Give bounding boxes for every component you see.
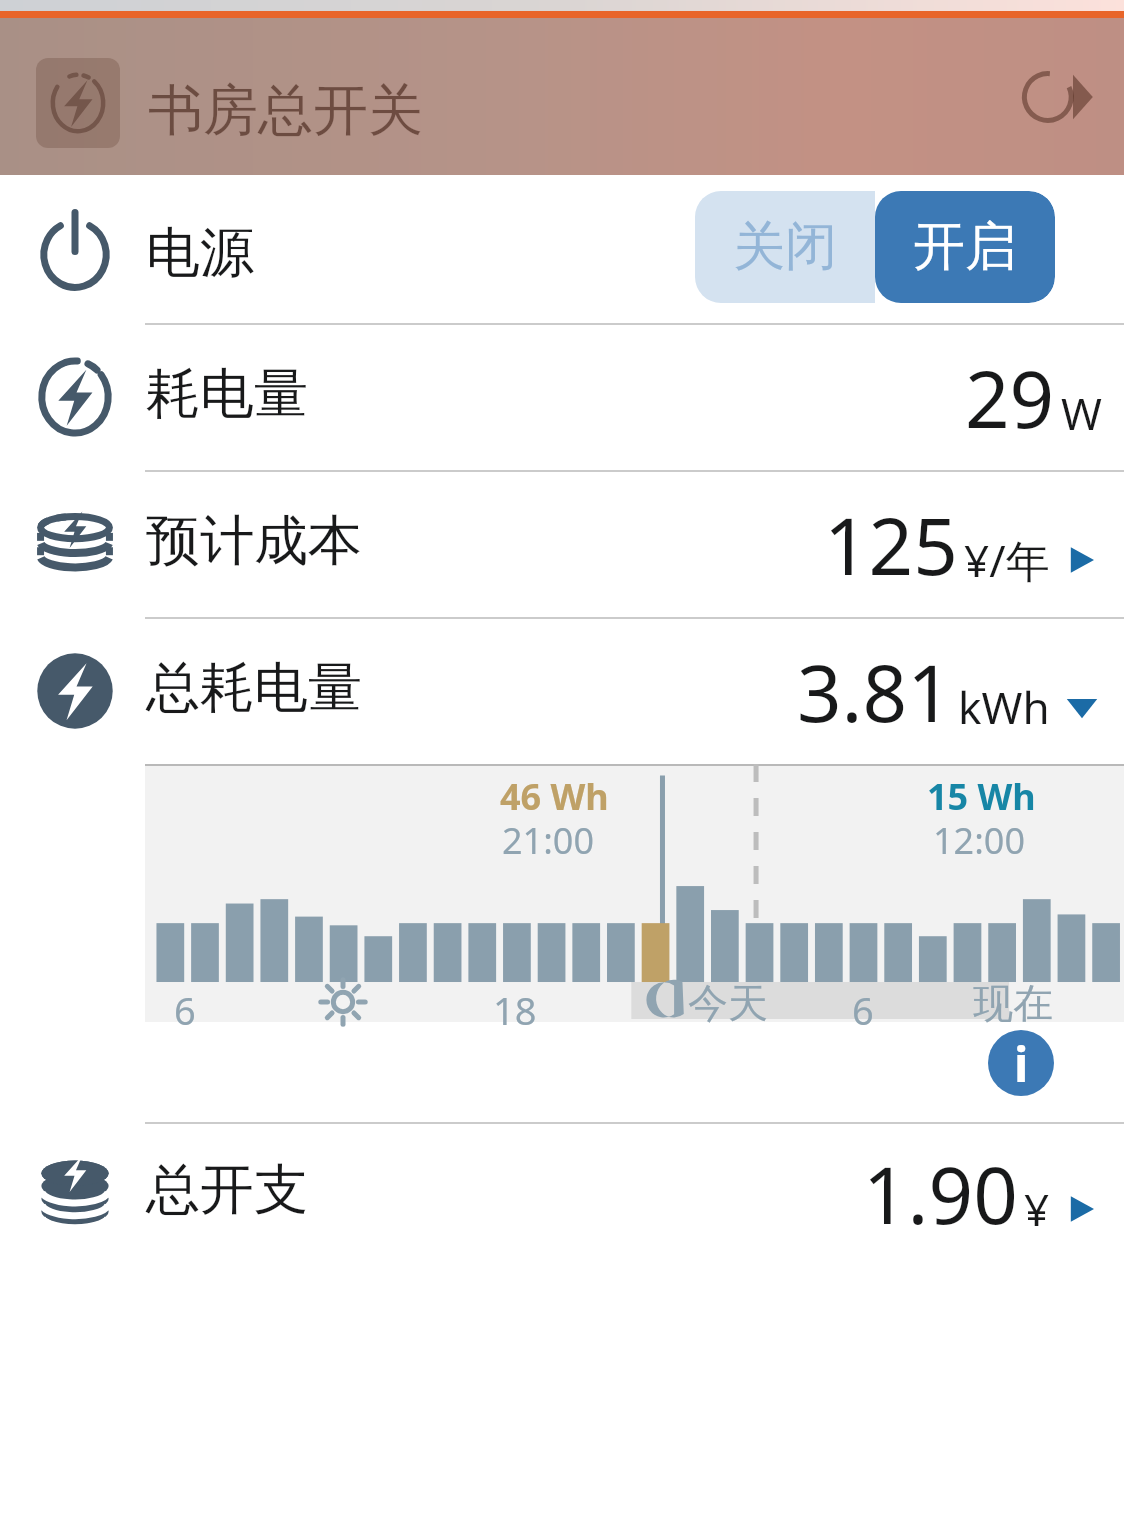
- staticText: 6: [852, 984, 874, 1036]
- button[interactable]: 总开支: [0, 1124, 1124, 1263]
- staticText: 21:00: [502, 816, 595, 865]
- staticText: 预计成本: [146, 507, 362, 575]
- staticText: kWh: [958, 677, 1050, 737]
- staticText: 今天: [688, 978, 768, 1028]
- staticText: ¥: [1024, 1179, 1050, 1239]
- staticText: 29: [965, 345, 1055, 451]
- button[interactable]: 耗电量: [0, 325, 1124, 470]
- staticText: 书房总开关: [148, 76, 423, 145]
- staticText: 耗电量: [146, 360, 308, 428]
- staticText: 18: [493, 984, 537, 1036]
- staticText: 开启: [913, 214, 1017, 280]
- staticText: 总开支: [146, 1156, 308, 1224]
- staticText: 12:00: [933, 816, 1026, 865]
- button[interactable]: 46 Wh: [145, 764, 1124, 1022]
- button[interactable]: 总耗电量: [0, 619, 1124, 764]
- staticText: 电源: [146, 219, 254, 287]
- button[interactable]: 关闭: [695, 191, 875, 303]
- staticText: 46 Wh: [500, 772, 609, 821]
- button[interactable]: 开启: [875, 191, 1055, 303]
- button[interactable]: Info: [988, 1030, 1054, 1096]
- staticText: 3.81: [797, 639, 952, 745]
- staticText: 125: [824, 492, 958, 598]
- button[interactable]: Refresh: [1010, 52, 1100, 142]
- staticText: 现在: [973, 978, 1053, 1028]
- staticText: ¥/年: [964, 530, 1050, 590]
- button[interactable]: 预计成本: [0, 472, 1124, 617]
- staticText: W: [1061, 383, 1102, 443]
- staticText: 关闭: [733, 214, 837, 280]
- staticText: 总耗电量: [146, 654, 362, 722]
- staticText: 1.90: [863, 1141, 1018, 1247]
- button[interactable]: 书房总开关: [0, 18, 1124, 175]
- staticText: i: [1014, 1031, 1029, 1096]
- staticText: 6: [174, 984, 196, 1036]
- staticText: 15 Wh: [927, 772, 1036, 821]
